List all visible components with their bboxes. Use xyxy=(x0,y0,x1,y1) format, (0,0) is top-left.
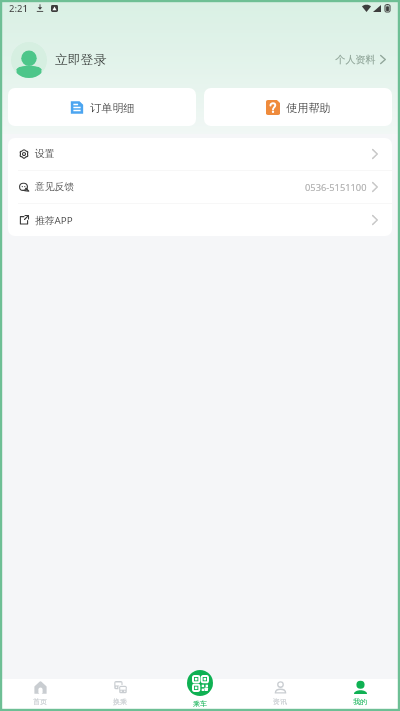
button[interactable]: 推荐APP xyxy=(8,204,392,236)
staticText: 意见反馈 xyxy=(35,181,75,193)
button[interactable]: 设置 xyxy=(8,138,392,170)
staticText: 使用帮助 xyxy=(286,101,331,115)
button[interactable]: 使用帮助 xyxy=(204,88,392,126)
staticText: 换乘 xyxy=(113,697,127,706)
staticText: 推荐APP xyxy=(35,214,73,227)
button[interactable]: 订单明细 xyxy=(8,88,196,126)
button[interactable]: 意见反馈 xyxy=(8,171,392,203)
staticText: 设置 xyxy=(35,148,55,160)
button[interactable]: 乘车 xyxy=(187,670,213,708)
staticText: 订单明细 xyxy=(90,101,135,115)
button[interactable]: 个人资料 xyxy=(335,47,386,72)
staticText: 我的 xyxy=(353,697,367,706)
button[interactable]: 换乘 xyxy=(80,679,160,711)
button[interactable]: 资讯 xyxy=(240,679,320,711)
button[interactable]: 立即登录 xyxy=(0,16,400,88)
button[interactable]: 首页 xyxy=(0,679,80,711)
staticText: 立即登录 xyxy=(55,52,107,68)
staticText: 资讯 xyxy=(273,697,287,706)
staticText: 2:21 xyxy=(9,2,28,15)
button[interactable]: 我的 xyxy=(320,679,400,711)
staticText: 首页 xyxy=(33,697,47,706)
staticText: 乘车 xyxy=(193,699,207,708)
staticText: 0536-5151100 xyxy=(305,181,367,194)
staticText: 个人资料 xyxy=(335,53,376,66)
